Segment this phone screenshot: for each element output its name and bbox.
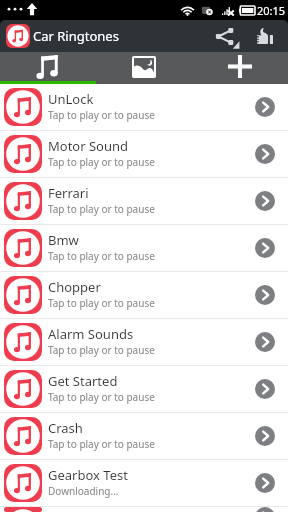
staticText: Gearbox Test <box>48 466 128 484</box>
staticText: Tap to play or to pause <box>48 155 155 169</box>
staticText: Chopper <box>48 278 101 296</box>
staticText: Bmw <box>48 231 79 249</box>
staticText: Downloading... <box>48 484 119 498</box>
button[interactable]: Alarm Sounds <box>0 319 288 366</box>
staticText: Tap to play or to pause <box>48 437 155 451</box>
button[interactable]: Wallpapers <box>96 52 192 81</box>
button[interactable]: Chopper <box>0 272 288 319</box>
button[interactable]: Ferrari <box>0 178 288 225</box>
button[interactable]: Motor Sound <box>0 131 288 178</box>
staticText: Tap to play or to pause <box>48 296 155 310</box>
button[interactable]: Crash <box>0 413 288 460</box>
button[interactable]: Share <box>209 20 245 52</box>
staticText: Tap to play or to pause <box>48 108 155 122</box>
staticText: Alarm Sounds <box>48 325 134 343</box>
button[interactable]: Get Started <box>0 366 288 413</box>
staticText: Tap to play or to pause <box>48 249 155 263</box>
staticText: Motor Sound <box>48 137 129 155</box>
button[interactable]: Bmw <box>0 225 288 272</box>
staticText: Ferrari <box>48 184 89 202</box>
staticText: Tap to play or to pause <box>48 202 155 216</box>
staticText: UnLock <box>48 90 94 108</box>
staticText: Crash <box>48 419 83 437</box>
button[interactable]: UnLock <box>0 84 288 131</box>
button[interactable]: Add more <box>192 52 288 81</box>
staticText: Car Ringtones <box>33 27 119 45</box>
staticText: Get Started <box>48 372 118 390</box>
button[interactable]: Rate this app <box>245 20 281 52</box>
button[interactable]: Gearbox Test <box>0 460 288 507</box>
staticText: Tap to play or to pause <box>48 390 155 404</box>
button[interactable]: Ringtones <box>0 52 96 81</box>
button[interactable]: Horn <box>0 507 288 512</box>
staticText: 20:15 <box>257 3 286 18</box>
staticText: Tap to play or to pause <box>48 343 155 357</box>
